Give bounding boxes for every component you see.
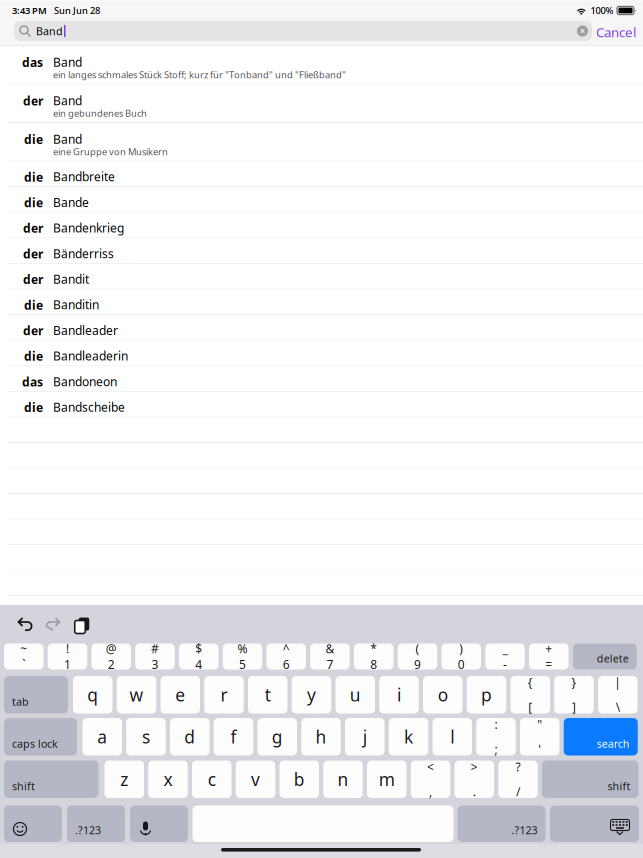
- button[interactable]: Paste: [67, 612, 93, 636]
- button[interactable]: ": [520, 718, 559, 755]
- button[interactable]: shift: [4, 760, 98, 798]
- button[interactable]: +: [529, 643, 568, 669]
- staticText: Bandenkrieg: [53, 220, 124, 236]
- staticText: Bänderriss: [53, 246, 114, 261]
- button[interactable]: ^: [266, 643, 306, 669]
- button[interactable]: ~: [4, 643, 43, 669]
- staticText: >: [471, 759, 478, 775]
- button[interactable]: j: [345, 718, 384, 755]
- staticText: das: [22, 54, 43, 70]
- button[interactable]: die: [0, 341, 643, 366]
- button[interactable]: l: [432, 718, 472, 755]
- button[interactable]: der: [0, 315, 643, 341]
- button[interactable]: n: [323, 760, 363, 798]
- button[interactable]: ): [441, 643, 481, 669]
- button[interactable]: d: [170, 718, 209, 755]
- button[interactable]: die: [0, 123, 643, 161]
- button[interactable]: caps lock: [4, 718, 77, 755]
- button[interactable]: *: [354, 643, 393, 669]
- staticText: b: [294, 768, 305, 791]
- button[interactable]: Redo: [40, 612, 66, 636]
- button[interactable]: Emoji: [4, 805, 62, 842]
- button[interactable]: .?123: [67, 805, 125, 842]
- button[interactable]: delete: [573, 643, 637, 669]
- button[interactable]: |: [598, 676, 637, 713]
- button[interactable]: w: [117, 676, 156, 713]
- button[interactable]: (: [398, 643, 437, 669]
- button[interactable]: search: [564, 718, 638, 755]
- button[interactable]: q: [73, 676, 112, 713]
- button[interactable]: }: [554, 676, 594, 713]
- staticText: 3: [151, 656, 158, 672]
- staticText: <: [427, 759, 434, 775]
- staticText: ): [459, 641, 463, 656]
- staticText: Bandit: [53, 271, 89, 287]
- button[interactable]: u: [335, 676, 375, 713]
- button[interactable]: tab: [4, 676, 68, 713]
- button[interactable]: das: [0, 366, 643, 392]
- button[interactable]: die: [0, 392, 643, 417]
- button[interactable]: der: [0, 84, 643, 123]
- staticText: ~: [20, 641, 27, 656]
- button[interactable]: x: [148, 760, 188, 798]
- staticText: tab: [12, 694, 29, 709]
- button[interactable]: e: [160, 676, 200, 713]
- button[interactable]: $: [179, 643, 218, 669]
- button[interactable]: Hide Keyboard: [550, 805, 639, 842]
- button[interactable]: &: [310, 643, 350, 669]
- staticText: ein gebundenes Buch: [53, 107, 147, 119]
- button[interactable]: t: [248, 676, 287, 713]
- button[interactable]: >: [454, 760, 494, 798]
- button[interactable]: _: [485, 643, 525, 669]
- staticText: _: [502, 641, 507, 656]
- button[interactable]: o: [423, 676, 462, 713]
- button[interactable]: shift: [542, 760, 638, 798]
- button[interactable]: der: [0, 213, 643, 238]
- button[interactable]: Cancel: [596, 20, 643, 44]
- button[interactable]: .?123: [457, 805, 545, 842]
- staticText: h: [315, 725, 326, 748]
- staticText: !: [66, 641, 69, 656]
- button[interactable]: s: [126, 718, 166, 755]
- button[interactable]: ?: [498, 760, 538, 798]
- staticText: Bandoneon: [53, 374, 117, 389]
- button[interactable]: Undo: [12, 612, 38, 636]
- button[interactable]: #: [135, 643, 175, 669]
- staticText: u: [350, 683, 361, 706]
- staticText: Sun Jun 28: [54, 4, 100, 17]
- staticText: Bandscheibe: [53, 399, 125, 415]
- button[interactable]: z: [104, 760, 144, 798]
- button[interactable]: r: [204, 676, 244, 713]
- button[interactable]: h: [301, 718, 341, 755]
- button[interactable]: !: [48, 643, 87, 669]
- button[interactable]: %: [223, 643, 262, 669]
- button[interactable]: <: [411, 760, 450, 798]
- button[interactable]: :: [476, 718, 516, 755]
- button[interactable]: y: [292, 676, 331, 713]
- button[interactable]: die: [0, 161, 643, 187]
- button[interactable]: a: [82, 718, 122, 755]
- button[interactable]: die: [0, 289, 643, 315]
- button[interactable]: f: [214, 718, 253, 755]
- button[interactable]: p: [467, 676, 506, 713]
- button[interactable]: g: [257, 718, 297, 755]
- button[interactable]: die: [0, 187, 643, 213]
- button[interactable]: {: [510, 676, 550, 713]
- button[interactable]: m: [367, 760, 406, 798]
- button[interactable]: c: [192, 760, 231, 798]
- button[interactable]: k: [389, 718, 428, 755]
- staticText: .?123: [75, 823, 101, 837]
- button[interactable]: Dictation: [130, 805, 188, 842]
- button[interactable]: i: [379, 676, 419, 713]
- button[interactable]: der: [0, 238, 643, 264]
- staticText: .: [473, 784, 476, 800]
- staticText: #: [151, 641, 159, 656]
- staticText: l: [450, 725, 454, 748]
- button[interactable]: b: [279, 760, 319, 798]
- button[interactable]: v: [236, 760, 275, 798]
- button[interactable]: @: [91, 643, 131, 669]
- staticText: shift: [607, 779, 630, 793]
- button[interactable]: das: [0, 46, 643, 84]
- button[interactable]: der: [0, 264, 643, 289]
